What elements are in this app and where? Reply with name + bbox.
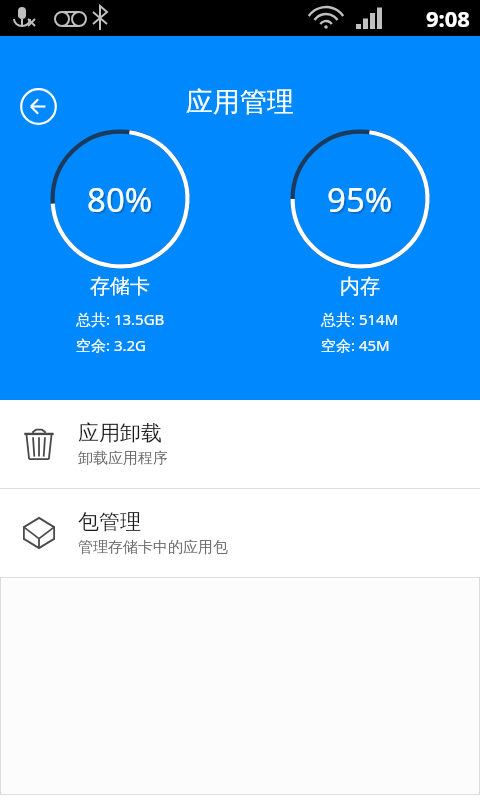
button[interactable]: Back [20, 88, 57, 125]
staticText: 80% [89, 179, 155, 224]
staticText: 总共: 13.5GB [76, 309, 165, 329]
staticText: 内存 [340, 274, 380, 299]
staticText: 存储卡 [90, 274, 150, 299]
staticText: 9:08 [426, 3, 470, 33]
staticText: 80% [87, 177, 153, 222]
staticText: 应用管理 [186, 85, 294, 119]
staticText: 卸载应用程序 [78, 449, 168, 468]
staticText: 管理存储卡中的应用包 [78, 538, 228, 557]
staticText: 总共: 514M [321, 309, 399, 329]
staticText: 95% [327, 177, 393, 222]
button[interactable]: 应用卸载 [0, 400, 480, 488]
staticText: 空余: 3.2G [76, 335, 147, 355]
staticText: 包管理 [78, 509, 141, 535]
staticText: 95% [329, 179, 395, 224]
button[interactable]: 包管理 [0, 489, 480, 577]
staticText: 应用卸载 [78, 420, 162, 446]
staticText: 空余: 45M [321, 335, 390, 355]
